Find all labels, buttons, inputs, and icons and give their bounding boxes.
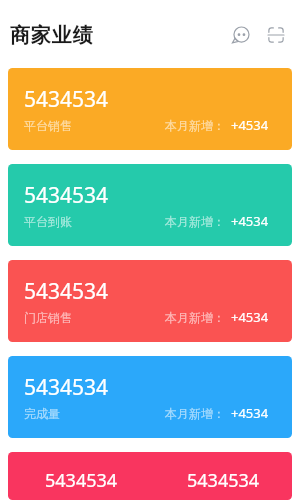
staticText: 本月新增： — [165, 406, 225, 421]
button[interactable]: Scan — [266, 25, 286, 45]
staticText: 5434534 — [24, 373, 109, 402]
staticText: 商家业绩 — [10, 23, 94, 48]
button[interactable]: 5434534 — [8, 356, 292, 438]
staticText: 5434534 — [24, 277, 109, 306]
staticText: +4534 — [231, 308, 269, 326]
staticText: 本月新增： — [165, 310, 225, 325]
staticText: 5434534 — [187, 468, 260, 493]
button[interactable]: 5434534 — [8, 260, 292, 342]
staticText: 门店销售 — [24, 310, 72, 325]
staticText: 5434534 — [45, 468, 118, 493]
staticText: 平台到账 — [24, 214, 72, 229]
staticText: 本月新增： — [165, 118, 225, 133]
staticText: +4534 — [231, 404, 269, 422]
button[interactable]: Messages — [231, 25, 251, 45]
staticText: +4534 — [231, 212, 269, 230]
button[interactable]: 5434534 — [8, 452, 150, 500]
button[interactable]: 5434534 — [150, 452, 292, 500]
staticText: 5434534 — [24, 181, 109, 210]
staticText: 本月新增： — [165, 214, 225, 229]
button[interactable]: 5434534 — [8, 164, 292, 246]
staticText: 完成量 — [24, 406, 60, 421]
staticText: 平台销售 — [24, 118, 72, 133]
staticText: 5434534 — [24, 85, 109, 114]
button[interactable]: 5434534 — [8, 68, 292, 150]
staticText: +4534 — [231, 116, 269, 134]
